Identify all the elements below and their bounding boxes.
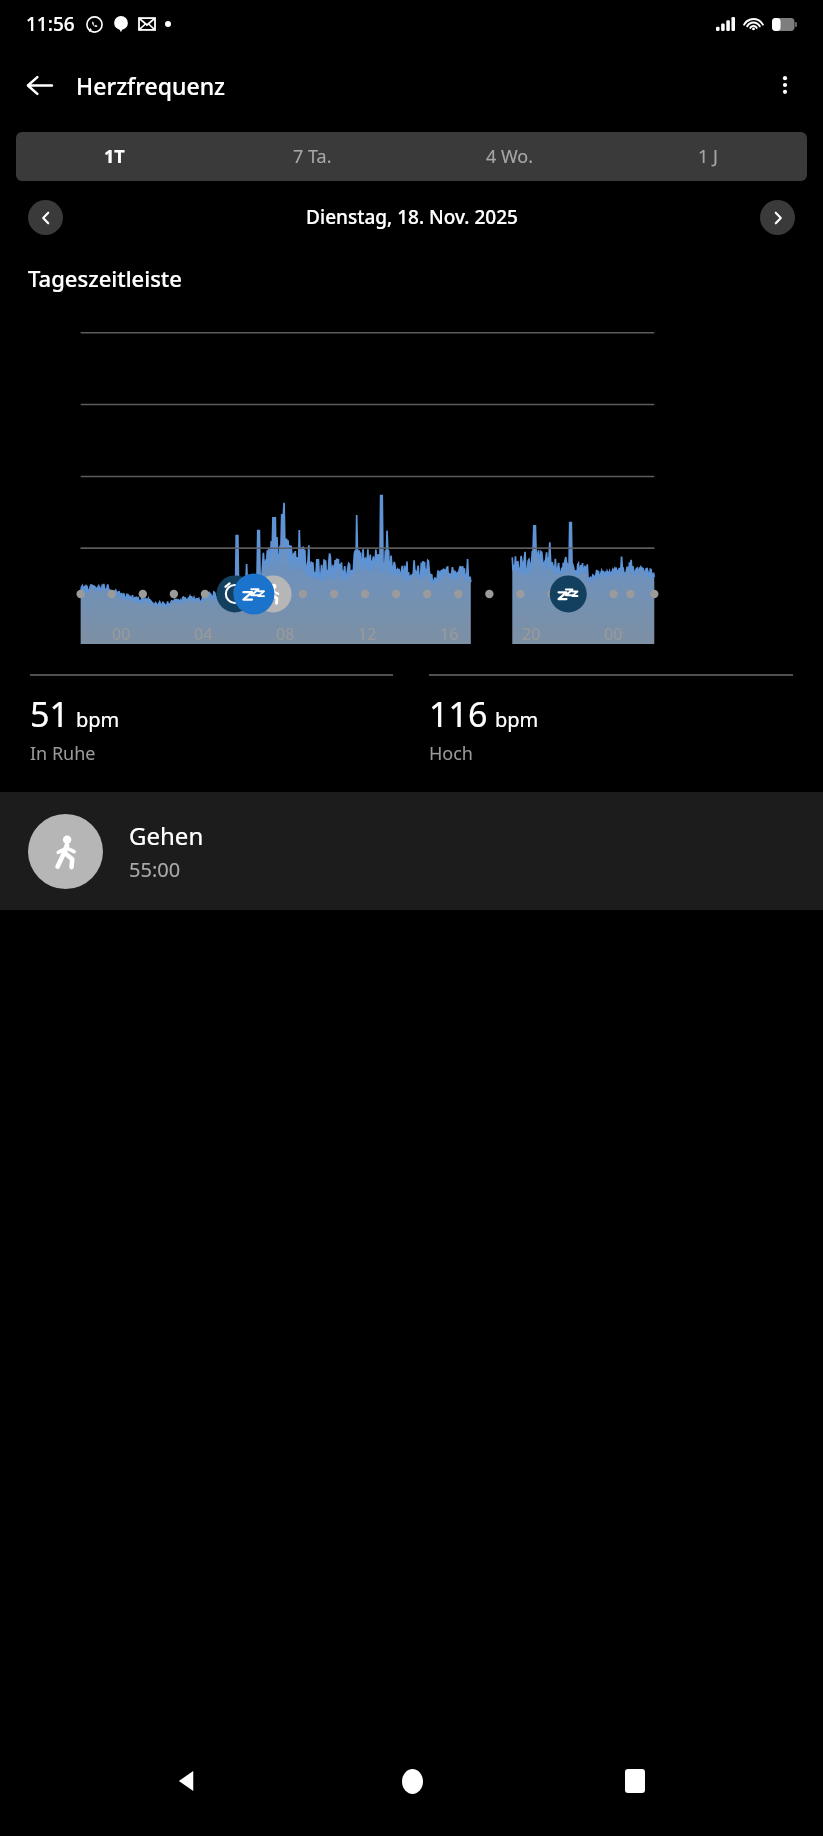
staticText: In Ruhe	[30, 741, 96, 766]
button[interactable]: 1 J	[609, 132, 807, 181]
staticText: 08	[276, 623, 295, 645]
button[interactable]: Gehen	[0, 792, 823, 910]
staticText: 1 J	[698, 144, 718, 169]
button[interactable]: Previous day	[28, 200, 63, 235]
staticText: Hoch	[429, 741, 473, 766]
staticText: 116	[429, 691, 488, 737]
staticText: Tageszeitleiste	[28, 263, 182, 293]
staticText: 12	[358, 623, 377, 645]
staticText: 00	[112, 623, 131, 645]
button[interactable]: Home	[377, 1746, 447, 1816]
staticText: 11:56	[26, 11, 75, 37]
button[interactable]: 1T	[16, 132, 213, 181]
button[interactable]: 116	[429, 675, 793, 766]
staticText: 04	[194, 623, 213, 645]
staticText: Dienstag, 18. Nov. 2025	[306, 204, 518, 230]
staticText: Herzfrequenz	[76, 70, 226, 101]
staticText: 4 Wo.	[486, 144, 534, 169]
staticText: bpm	[495, 706, 539, 733]
button[interactable]: 4 Wo.	[411, 132, 609, 181]
button[interactable]: 51	[30, 675, 393, 766]
staticText: bpm	[76, 706, 120, 733]
button[interactable]: Next day	[760, 200, 795, 235]
staticText: 55:00	[129, 856, 181, 883]
staticText: 00	[604, 623, 623, 645]
button[interactable]: Back	[12, 58, 66, 112]
staticText: 20	[522, 623, 541, 645]
staticText: 1T	[104, 144, 125, 169]
staticText: 7 Ta.	[293, 144, 332, 169]
button[interactable]: More options	[759, 59, 811, 111]
staticText: 51	[30, 691, 69, 737]
staticText: 16	[440, 623, 459, 645]
button[interactable]: 7 Ta.	[213, 132, 411, 181]
button[interactable]: Recent apps	[600, 1746, 670, 1816]
button[interactable]: Back	[153, 1746, 223, 1816]
staticText: Gehen	[129, 819, 204, 852]
